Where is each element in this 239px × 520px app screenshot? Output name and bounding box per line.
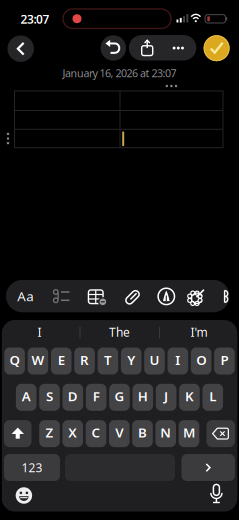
staticText: R [80,351,89,369]
staticText: L [209,387,216,405]
button[interactable]: U [144,347,165,374]
staticText: 123 [21,459,42,475]
button[interactable]: S [39,384,60,411]
button[interactable]: More [163,35,193,60]
staticText: M [183,423,195,441]
staticText: B [138,423,147,441]
button[interactable]: More tools [223,290,233,303]
staticText: C [91,423,100,441]
button[interactable]: G [109,384,130,411]
staticText: Aa [17,287,33,305]
staticText: X [68,423,77,441]
staticText: J [164,387,168,405]
button[interactable]: Handwriting [185,286,207,308]
button[interactable]: Share [132,35,162,60]
button[interactable]: Return [181,454,235,481]
button[interactable]: V [109,420,130,447]
staticText: S [46,387,53,405]
button[interactable]: I [2,323,76,341]
button[interactable]: R [74,347,95,374]
button[interactable]: N [155,420,176,447]
button[interactable]: A [16,384,36,411]
staticText: P [220,351,228,369]
staticText: Q [10,351,20,369]
staticText: U [149,351,159,369]
staticText: W [31,351,44,369]
button[interactable]: Y [121,347,141,374]
staticText: O [196,351,206,369]
button[interactable]: O [191,347,211,374]
button[interactable]: P [214,347,235,374]
button[interactable]: D [62,384,83,411]
button[interactable]: Z [39,420,60,447]
button[interactable]: J [156,384,176,411]
button[interactable]: Delete [206,420,235,447]
button[interactable]: I [167,347,188,374]
staticText: I [175,351,180,369]
button[interactable]: The [82,323,156,341]
staticText: E [58,351,65,369]
button[interactable]: Shift [4,420,31,447]
button[interactable]: T [98,347,118,374]
staticText: 23:07 [21,11,49,27]
staticText: The [109,324,130,340]
staticText: January 16, 2026 at 23:07 [62,66,176,80]
button[interactable]: W [28,347,48,374]
staticText: H [138,387,148,405]
button[interactable]: K [179,384,200,411]
staticText: Y [127,351,135,369]
staticText: T [104,351,112,369]
button[interactable]: M [179,420,199,447]
button[interactable]: Select column [161,82,181,90]
button[interactable]: E [51,347,71,374]
button[interactable]: L [202,384,223,411]
staticText: F [93,387,100,405]
button[interactable]: Done [204,35,230,61]
staticText: A [22,387,31,405]
button[interactable]: F [86,384,106,411]
staticText: I'm [190,324,207,340]
button[interactable]: Undo [100,35,126,61]
button[interactable]: Numbers [4,454,60,481]
staticText: I [37,324,41,340]
button[interactable]: Emoji [15,487,32,504]
button[interactable]: Format [10,280,40,312]
staticText: Z [45,423,53,441]
button[interactable]: Q [4,347,25,374]
button[interactable]: H [132,384,153,411]
button[interactable]: Stop screen recording [63,9,171,28]
button[interactable]: Table [84,287,108,307]
staticText: N [160,423,171,441]
button[interactable]: Dictate [209,484,223,505]
button[interactable]: Attach [127,289,138,306]
button[interactable]: C [86,420,106,447]
staticText: K [185,387,194,405]
button[interactable]: Markup [158,288,175,305]
button[interactable]: Back [7,35,34,62]
staticText: V [115,423,123,441]
staticText: D [68,387,78,405]
button[interactable]: I'm [162,323,236,341]
staticText: G [114,387,124,405]
button[interactable]: X [62,420,83,447]
button[interactable]: Select row [4,128,12,148]
button[interactable]: Checklist [48,283,74,309]
button[interactable]: B [132,420,153,447]
